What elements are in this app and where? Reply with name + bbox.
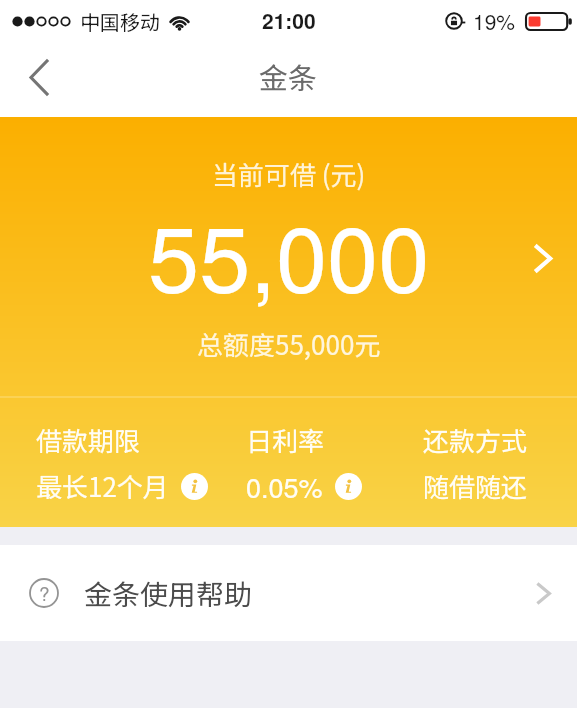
staticText: 金条使用帮助 [84, 573, 253, 614]
staticText: 中国移动 [80, 7, 160, 36]
button[interactable]: Info [181, 473, 208, 500]
staticText: ? [39, 579, 50, 606]
staticText: 金条 [259, 55, 318, 97]
staticText: 21:00 [262, 5, 316, 35]
staticText: 还款方式 [423, 421, 528, 459]
staticText: 最长12个月 [36, 467, 169, 505]
staticText: 0.05% [246, 467, 323, 506]
staticText: 55,000 [148, 187, 430, 319]
button[interactable]: Back [0, 46, 72, 114]
button[interactable]: ? [0, 545, 577, 641]
staticText: 总额度55,000元 [197, 325, 381, 363]
staticText: 借款期限 [36, 421, 141, 459]
button[interactable]: Info [335, 473, 362, 500]
staticText: 当前可借 (元) [212, 155, 366, 193]
staticText: 日利率 [246, 421, 325, 459]
button[interactable]: 当前可借 (元) [0, 117, 577, 396]
staticText: 随借随还 [423, 467, 528, 505]
staticText: 19% [473, 6, 516, 36]
